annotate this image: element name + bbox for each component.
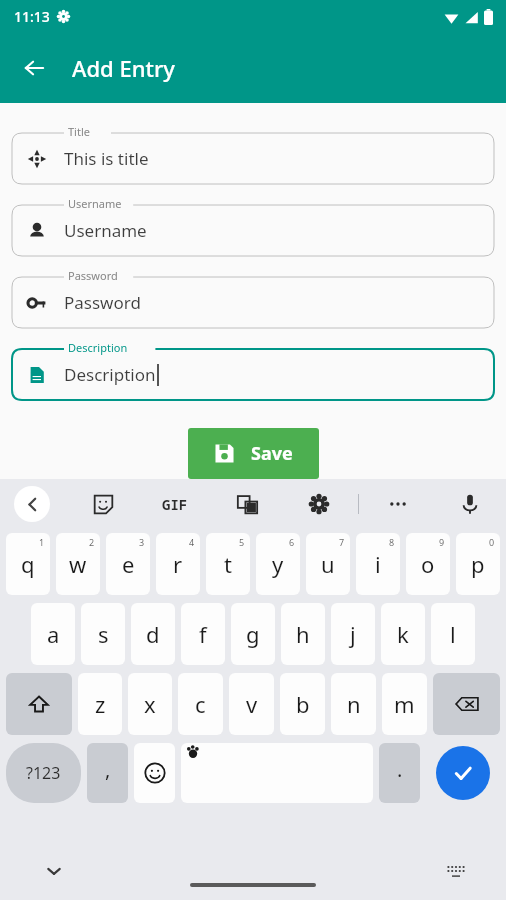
staticText: This is title	[64, 147, 149, 170]
button[interactable]: Save	[188, 428, 319, 479]
staticText: Add Entry	[72, 53, 175, 83]
staticText: Username	[64, 219, 147, 242]
staticText: Description	[68, 340, 128, 355]
staticText: w	[69, 549, 87, 579]
button[interactable]: Space	[181, 743, 373, 803]
staticText: 6	[289, 536, 295, 548]
staticText: 0	[489, 536, 495, 548]
staticText: ?123	[26, 762, 61, 784]
staticText: s	[98, 619, 109, 649]
button[interactable]: ?123	[6, 743, 81, 803]
staticText: b	[296, 689, 310, 719]
button[interactable]: Back	[10, 44, 58, 92]
button[interactable]: Enter	[436, 746, 490, 800]
button[interactable]: c	[178, 673, 223, 735]
button[interactable]: z	[78, 673, 122, 735]
button[interactable]: b	[280, 673, 325, 735]
staticText: l	[450, 619, 456, 649]
staticText: t	[224, 549, 232, 579]
staticText: Username	[68, 196, 122, 211]
button[interactable]: k	[381, 603, 425, 665]
staticText: GIF	[162, 495, 188, 514]
staticText: c	[195, 689, 206, 719]
button[interactable]: d	[131, 603, 175, 665]
staticText: j	[350, 619, 356, 649]
button[interactable]: v	[229, 673, 274, 735]
button[interactable]: Backspace	[433, 673, 500, 735]
button[interactable]: .	[379, 743, 420, 803]
staticText: 9	[439, 536, 445, 548]
button[interactable]: u	[306, 533, 350, 595]
button[interactable]: Shift	[6, 673, 72, 735]
button[interactable]: w	[56, 533, 100, 595]
staticText: 5	[239, 536, 245, 548]
staticText: 8	[389, 536, 395, 548]
button[interactable]: Back	[14, 486, 50, 522]
button[interactable]: s	[81, 603, 125, 665]
staticText: a	[47, 619, 60, 649]
button[interactable]: g	[231, 603, 275, 665]
staticText: Title	[68, 124, 90, 139]
button[interactable]: r	[156, 533, 200, 595]
staticText: h	[296, 619, 310, 649]
staticText: Save	[251, 441, 293, 466]
staticText: z	[95, 689, 106, 719]
button[interactable]: j	[331, 603, 375, 665]
staticText: y	[272, 549, 284, 579]
staticText: o	[421, 549, 435, 579]
staticText: d	[146, 619, 160, 649]
button[interactable]: h	[281, 603, 325, 665]
button[interactable]: p	[456, 533, 500, 595]
staticText: g	[246, 619, 260, 649]
button[interactable]: Password	[12, 268, 494, 328]
staticText: 3	[139, 536, 145, 548]
button[interactable]: Voice input	[450, 484, 490, 524]
staticText: 2	[89, 536, 95, 548]
staticText: f	[199, 619, 207, 649]
button[interactable]: l	[431, 603, 475, 665]
button[interactable]: Switch keyboard	[438, 853, 474, 889]
button[interactable]: a	[31, 603, 75, 665]
staticText: k	[397, 619, 409, 649]
button[interactable]: ,	[87, 743, 128, 803]
button[interactable]: Description	[12, 340, 494, 400]
staticText: n	[347, 689, 361, 719]
button[interactable]: Username	[12, 196, 494, 256]
button[interactable]: q	[6, 533, 50, 595]
staticText: Password	[64, 291, 141, 314]
staticText: i	[375, 549, 381, 579]
button[interactable]: More options	[378, 484, 418, 524]
staticText: p	[471, 549, 485, 579]
staticText: 7	[339, 536, 345, 548]
button[interactable]: y	[256, 533, 300, 595]
staticText: m	[394, 689, 415, 719]
button[interactable]: t	[206, 533, 250, 595]
staticText: Password	[68, 268, 118, 283]
staticText: 1	[39, 536, 45, 548]
button[interactable]: n	[331, 673, 376, 735]
staticText: u	[321, 549, 335, 579]
button[interactable]: i	[356, 533, 400, 595]
button[interactable]: Translate	[227, 484, 267, 524]
staticText: .	[397, 756, 403, 783]
button[interactable]: Sticker	[83, 484, 123, 524]
staticText: x	[144, 689, 156, 719]
staticText: 11:13	[14, 7, 50, 26]
staticText: q	[21, 549, 35, 579]
button[interactable]: Emoji	[134, 743, 175, 803]
button[interactable]: f	[181, 603, 225, 665]
staticText: v	[246, 689, 258, 719]
button[interactable]: o	[406, 533, 450, 595]
button[interactable]: GIF	[155, 484, 195, 524]
staticText: e	[122, 549, 135, 579]
button[interactable]: Title	[12, 124, 494, 184]
staticText: 4	[189, 536, 195, 548]
button[interactable]: e	[106, 533, 150, 595]
staticText: Description	[64, 363, 156, 386]
button[interactable]: Settings	[299, 484, 339, 524]
button[interactable]: x	[128, 673, 172, 735]
button[interactable]: m	[382, 673, 427, 735]
staticText: ,	[105, 756, 111, 783]
button[interactable]: Hide keyboard	[36, 853, 72, 889]
staticText: r	[173, 549, 183, 579]
